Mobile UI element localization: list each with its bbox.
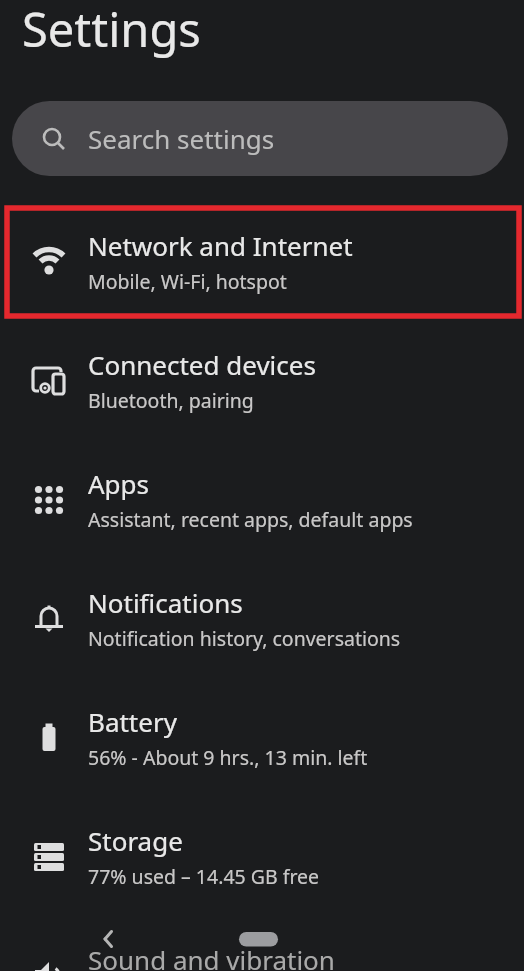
staticText: Assistant, recent apps, default apps [88, 506, 413, 533]
button[interactable]: Battery [0, 678, 524, 797]
button[interactable]: Notifications [0, 559, 524, 678]
staticText: Apps [88, 466, 150, 501]
button[interactable]: Connected devices [0, 321, 524, 440]
staticText: Mobile, Wi-Fi, hotspot [88, 268, 287, 295]
staticText: Search settings [88, 121, 275, 156]
button[interactable]: Apps [0, 440, 524, 559]
button[interactable]: Sound and vibration [0, 916, 524, 971]
staticText: Notification history, conversations [88, 625, 401, 652]
staticText: Bluetooth, pairing [88, 387, 254, 414]
button[interactable]: Network and Internet [0, 202, 524, 321]
staticText: Notifications [88, 585, 243, 620]
staticText: Storage [88, 823, 183, 858]
staticText: Network and Internet [88, 228, 353, 263]
staticText: Settings [22, 0, 201, 61]
staticText: 77% used – 14.45 GB free [88, 863, 320, 890]
staticText: Connected devices [88, 347, 316, 382]
staticText: Sound and vibration [88, 942, 335, 971]
button[interactable]: Storage [0, 797, 524, 916]
staticText: 56% - About 9 hrs., 13 min. left [88, 744, 368, 771]
staticText: Battery [88, 704, 177, 739]
button[interactable]: Search settings [12, 101, 508, 176]
